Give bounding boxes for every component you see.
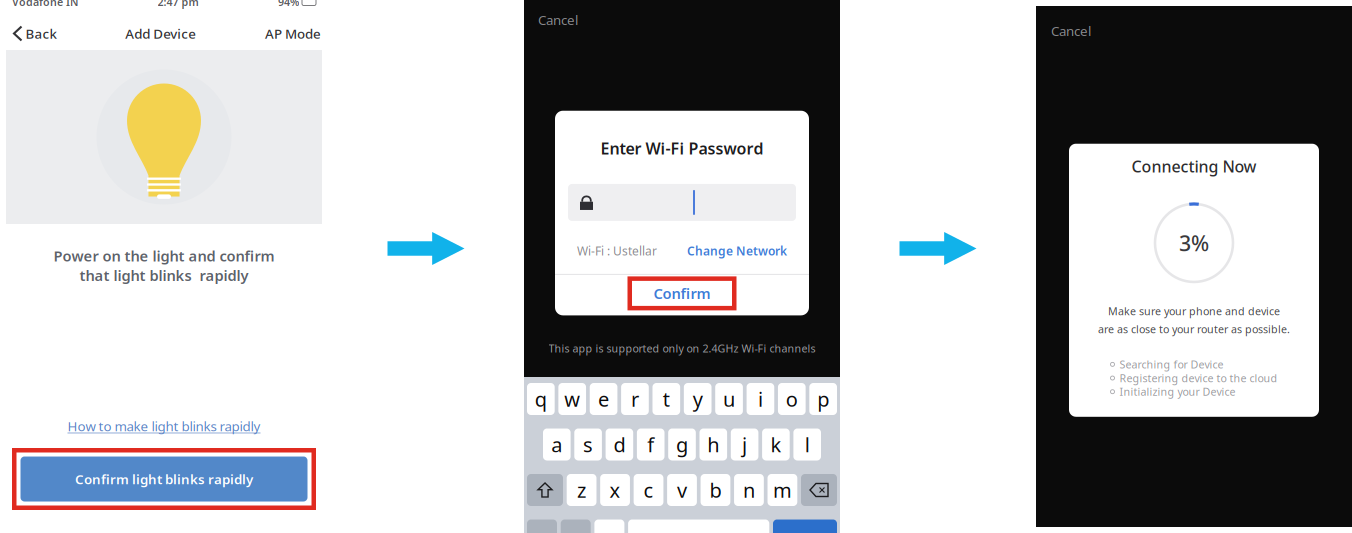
button[interactable]: m	[767, 474, 797, 506]
staticText: Add Device	[125, 25, 196, 42]
button[interactable]: Shift	[527, 474, 563, 506]
button[interactable]: v	[667, 474, 697, 506]
staticText: m	[773, 477, 792, 503]
staticText: z	[577, 477, 586, 503]
staticText: q	[535, 386, 547, 412]
button[interactable]: z	[567, 474, 596, 506]
button[interactable]: Back	[0, 18, 64, 48]
staticText: Cancel	[538, 11, 578, 29]
staticText: that light blinks rapidly	[79, 265, 248, 285]
staticText: f	[647, 431, 654, 458]
staticText: u	[723, 386, 735, 412]
button[interactable]: d	[606, 428, 633, 460]
button[interactable]: Cancel	[1036, 16, 1106, 46]
staticText: x	[610, 477, 621, 503]
staticText: t	[663, 386, 670, 412]
button[interactable]: p	[809, 383, 837, 415]
staticText: Confirm	[653, 284, 710, 303]
button[interactable]: t	[652, 383, 680, 415]
staticText: Change Network	[687, 243, 787, 259]
button[interactable]: s	[574, 428, 602, 460]
staticText: y	[693, 386, 703, 412]
staticText: Connecting Now	[1131, 156, 1256, 177]
staticText: j	[742, 431, 747, 458]
button[interactable]: n	[734, 474, 764, 506]
button[interactable]: h	[699, 428, 727, 460]
button[interactable]: j	[731, 428, 758, 460]
button[interactable]: q	[527, 383, 555, 415]
staticText: Confirm light blinks rapidly	[75, 470, 253, 488]
button[interactable]: l	[793, 428, 821, 460]
staticText: s	[583, 431, 593, 458]
staticText: v	[677, 477, 687, 503]
staticText: d	[613, 431, 625, 458]
button[interactable]: Confirm	[627, 276, 736, 310]
button[interactable]: AP Mode	[257, 18, 328, 48]
button[interactable]: Confirm light blinks rapidly	[12, 448, 316, 510]
button[interactable]: Change Network	[687, 243, 787, 259]
staticText: AP Mode	[265, 25, 321, 42]
staticText: i	[758, 386, 763, 412]
staticText: w	[564, 386, 580, 412]
staticText: e	[598, 386, 609, 412]
staticText: a	[551, 431, 562, 458]
button[interactable]: a	[543, 428, 571, 460]
staticText: Vodafone IN	[12, 0, 78, 9]
staticText: r	[631, 386, 639, 412]
button[interactable]: Delete	[801, 474, 837, 506]
staticText: Back	[25, 25, 56, 42]
button[interactable]: x	[600, 474, 630, 506]
staticText: l	[805, 431, 810, 458]
button[interactable]: e	[590, 383, 617, 415]
staticText: 94%	[278, 0, 299, 9]
staticText: 2:47 pm	[157, 0, 198, 9]
staticText: n	[743, 477, 755, 503]
staticText: Initializing your Device	[1119, 385, 1235, 399]
button[interactable]: How to make light blinks rapidly	[61, 415, 266, 437]
staticText: 3%	[1179, 229, 1209, 257]
staticText: Registering device to the cloud	[1119, 371, 1277, 385]
button[interactable]: c	[634, 474, 663, 506]
staticText: g	[676, 431, 688, 458]
button[interactable]: g	[668, 428, 696, 460]
staticText: k	[770, 431, 781, 458]
staticText: h	[707, 431, 719, 458]
button[interactable]: u	[715, 383, 743, 415]
staticText: Searching for Device	[1119, 357, 1223, 371]
staticText: o	[786, 386, 798, 412]
staticText: Wi-Fi : Ustellar	[577, 243, 657, 259]
staticText: Power on the light and confirm	[53, 246, 274, 265]
staticText: are as close to your router as possible.	[1098, 322, 1290, 336]
button[interactable]: b	[701, 474, 730, 506]
button[interactable]: r	[621, 383, 649, 415]
staticText: c	[643, 477, 653, 503]
staticText: Make sure your phone and device	[1108, 304, 1280, 318]
staticText: How to make light blinks rapidly	[67, 417, 260, 435]
button[interactable]: y	[684, 383, 712, 415]
staticText: This app is supported only on 2.4GHz Wi-…	[548, 341, 815, 356]
staticText: p	[817, 386, 829, 412]
staticText: Enter Wi-Fi Password	[600, 138, 763, 159]
button[interactable]: k	[762, 428, 790, 460]
button[interactable]: f	[637, 428, 664, 460]
staticText: b	[709, 477, 721, 503]
button[interactable]: w	[558, 383, 586, 415]
button[interactable]: Cancel	[524, 5, 592, 35]
staticText: Cancel	[1051, 22, 1091, 40]
button[interactable]: i	[747, 383, 774, 415]
button[interactable]: o	[778, 383, 806, 415]
